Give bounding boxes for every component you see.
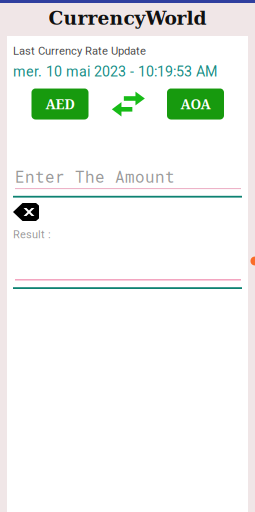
- staticText: mer. 10 mai 2023 - 10:19:53 AM: [13, 63, 217, 80]
- button[interactable]: Clear amount: [13, 203, 39, 221]
- staticText: AED: [45, 95, 74, 113]
- staticText: Enter The Amount: [15, 166, 175, 187]
- button[interactable]: AOA: [167, 88, 224, 119]
- staticText: AOA: [180, 95, 210, 113]
- button[interactable]: Swap currencies: [112, 90, 145, 117]
- staticText: CurrencyWorld: [48, 7, 206, 29]
- staticText: Result :: [13, 228, 51, 241]
- staticText: Last Currency Rate Update: [13, 44, 146, 57]
- button[interactable]: AED: [31, 88, 88, 119]
